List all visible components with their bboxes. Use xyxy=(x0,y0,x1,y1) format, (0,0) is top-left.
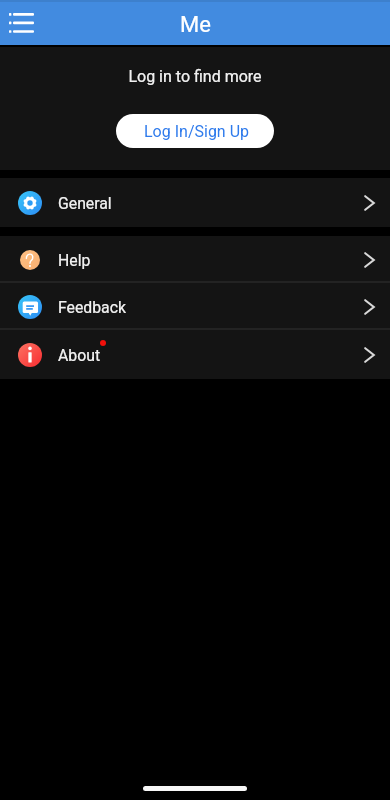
staticText: Me xyxy=(180,12,211,38)
button[interactable]: Feedback xyxy=(0,283,390,330)
staticText: Feedback xyxy=(58,298,126,317)
button[interactable]: About xyxy=(0,330,390,379)
button[interactable]: Menu xyxy=(0,0,46,45)
staticText: About xyxy=(58,346,101,365)
staticText: Help xyxy=(58,251,91,270)
button[interactable]: Log In/Sign Up xyxy=(116,114,274,148)
button[interactable]: General xyxy=(0,178,390,227)
staticText: Log In/Sign Up xyxy=(144,122,250,141)
staticText: General xyxy=(58,194,112,213)
staticText: Log in to find more xyxy=(128,67,262,86)
button[interactable]: Help xyxy=(0,236,390,283)
